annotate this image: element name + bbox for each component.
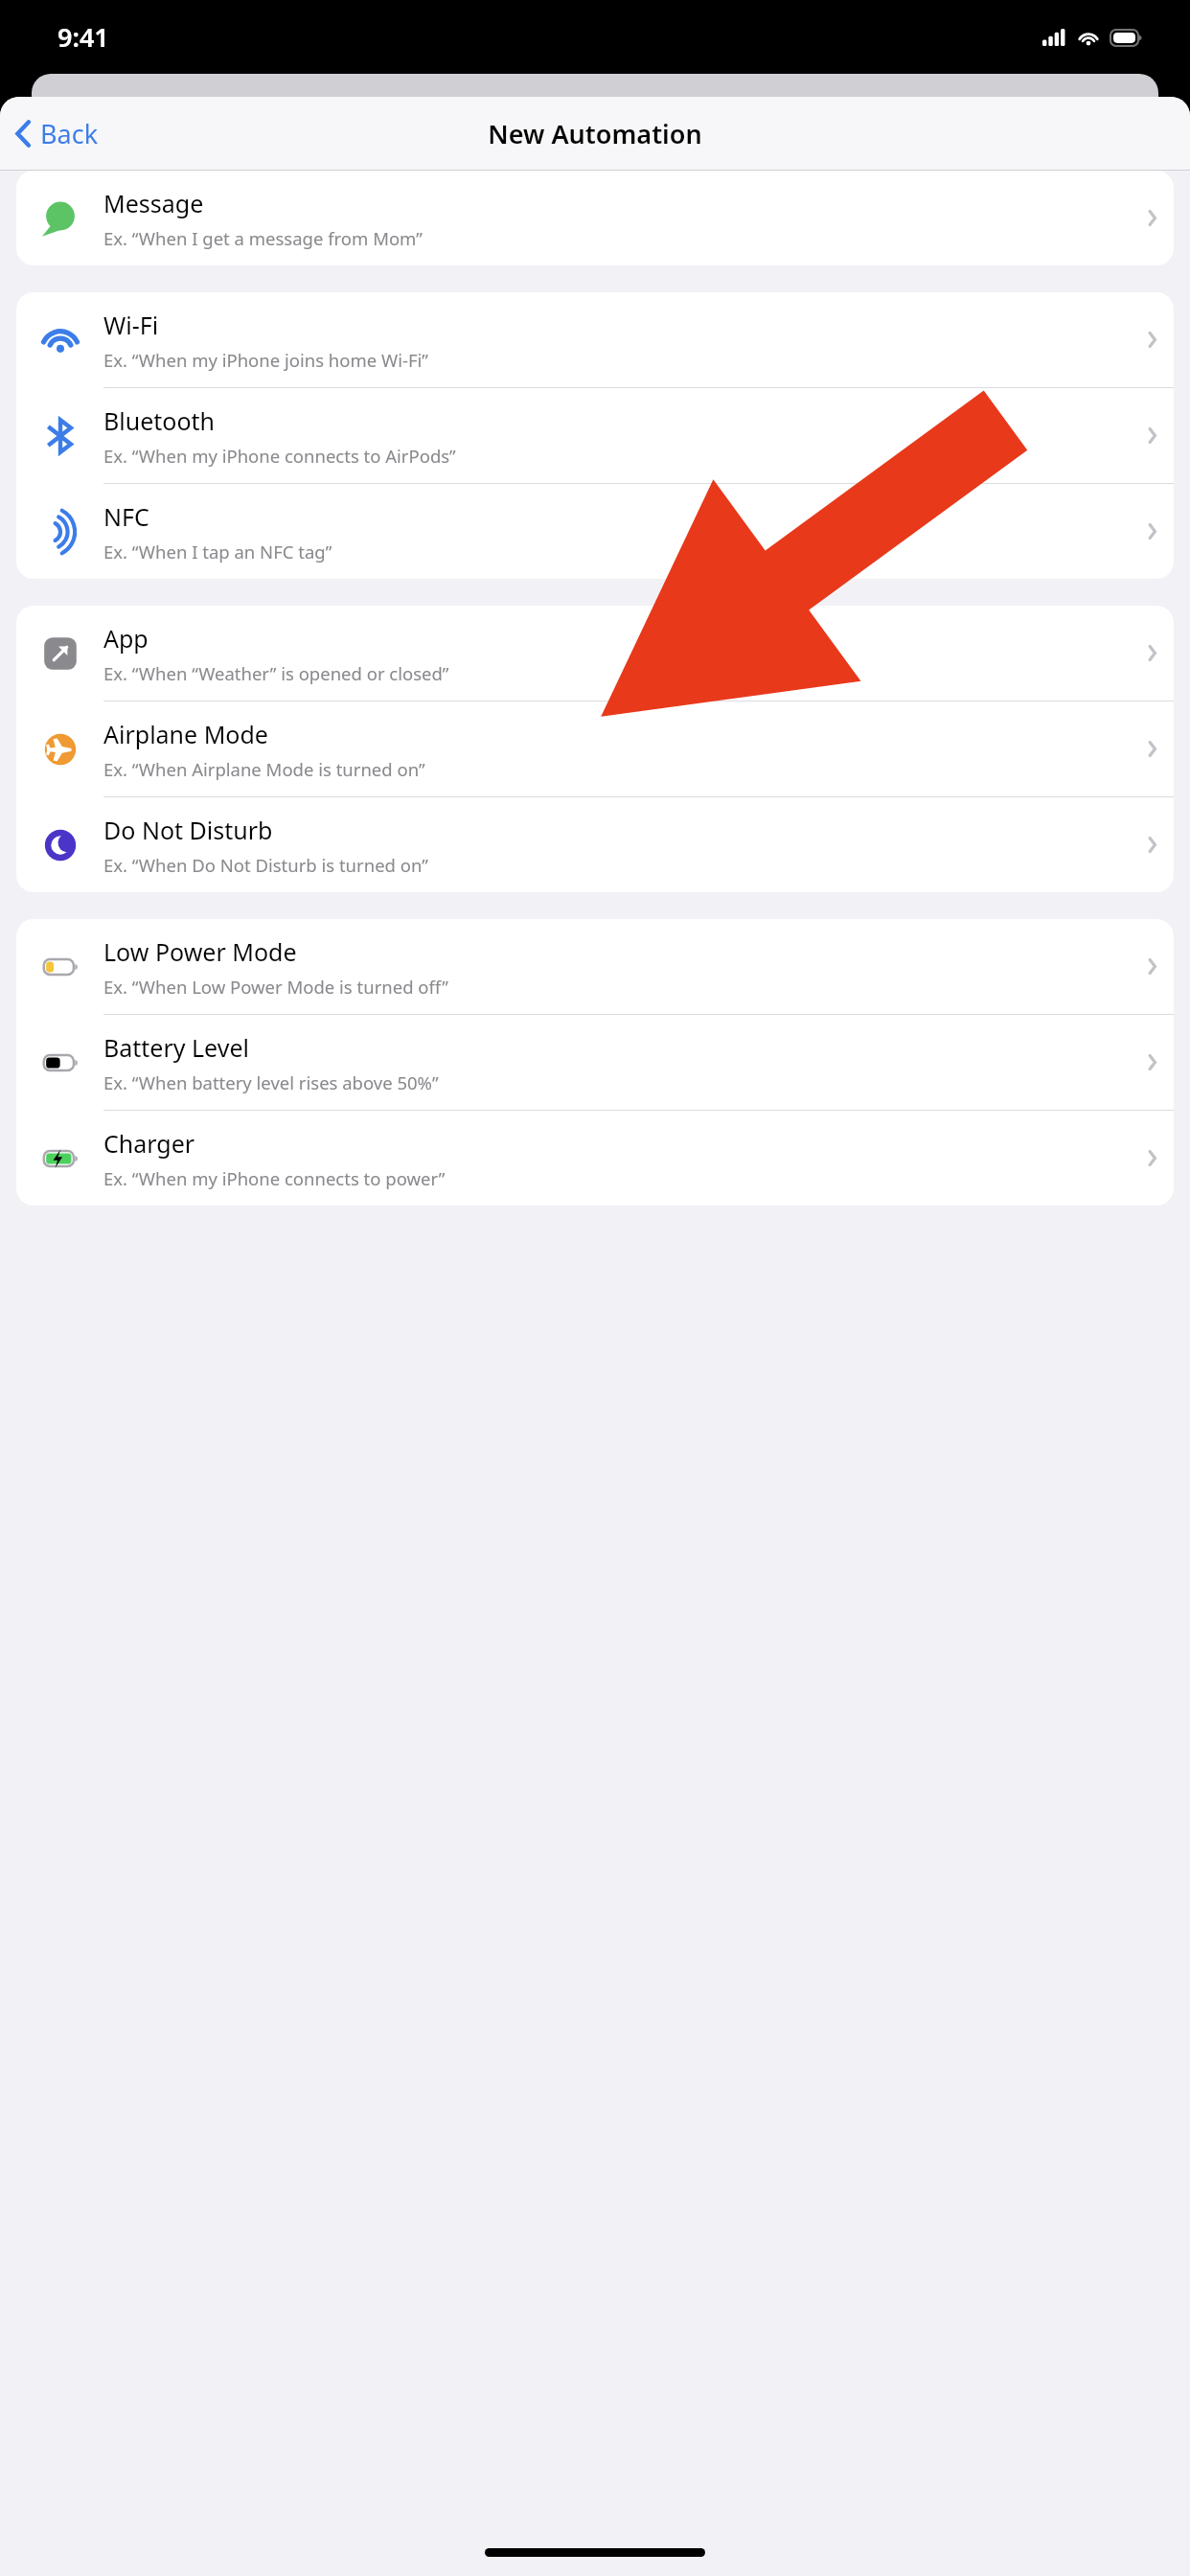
button[interactable]: Charger <box>16 1111 1174 1206</box>
staticText: New Automation <box>488 116 702 151</box>
staticText: Low Power Mode <box>103 935 297 968</box>
button[interactable]: Do Not Disturb <box>16 797 1174 892</box>
button[interactable]: App <box>16 606 1174 701</box>
staticText: Bluetooth <box>103 404 216 437</box>
button[interactable]: Airplane Mode <box>16 701 1174 797</box>
staticText: Ex. “When my iPhone connects to AirPods” <box>103 444 456 468</box>
button[interactable]: Low Power Mode <box>16 919 1174 1015</box>
staticText: Ex. “When Low Power Mode is turned off” <box>103 975 448 999</box>
staticText: Ex. “When I get a message from Mom” <box>103 226 423 250</box>
button[interactable]: Bluetooth <box>16 388 1174 484</box>
staticText: Battery Level <box>103 1031 249 1064</box>
staticText: Wi-Fi <box>103 309 159 341</box>
staticText: Ex. “When Airplane Mode is turned on” <box>103 757 425 781</box>
staticText: Ex. “When battery level rises above 50%” <box>103 1070 439 1094</box>
staticText: Airplane Mode <box>103 718 268 750</box>
staticText: 9:41 <box>57 19 109 55</box>
staticText: NFC <box>103 500 149 533</box>
staticText: Ex. “When “Weather” is opened or closed” <box>103 661 449 685</box>
button[interactable]: Message <box>16 171 1174 265</box>
button[interactable]: Battery Level <box>16 1015 1174 1111</box>
staticText: Message <box>103 187 204 219</box>
staticText: Ex. “When my iPhone joins home Wi-Fi” <box>103 348 428 372</box>
button[interactable]: Wi-Fi <box>16 292 1174 388</box>
staticText: Charger <box>103 1127 195 1160</box>
staticText: App <box>103 622 149 655</box>
staticText: Ex. “When Do Not Disturb is turned on” <box>103 853 428 877</box>
staticText: Back <box>40 116 99 151</box>
staticText: Ex. “When my iPhone connects to power” <box>103 1166 446 1190</box>
button[interactable]: NFC <box>16 484 1174 579</box>
staticText: Do Not Disturb <box>103 814 273 846</box>
staticText: Ex. “When I tap an NFC tag” <box>103 540 332 563</box>
button[interactable]: Back <box>15 116 99 151</box>
